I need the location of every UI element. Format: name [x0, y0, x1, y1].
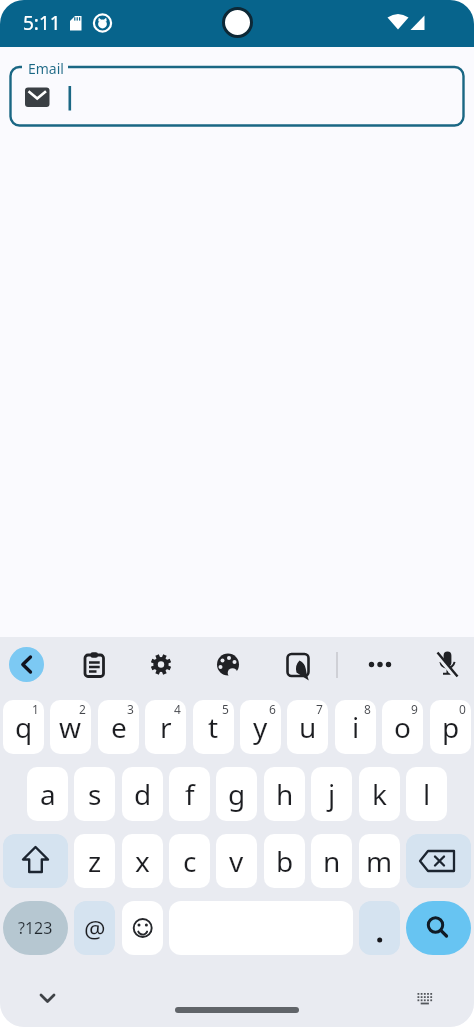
button[interactable]: e — [98, 700, 139, 754]
staticText: ?123 — [18, 917, 53, 939]
button[interactable] — [427, 644, 467, 684]
button[interactable]: j — [311, 767, 352, 821]
button[interactable] — [405, 978, 445, 1018]
staticText: o — [394, 708, 411, 746]
button[interactable]: r — [145, 700, 186, 754]
staticText: d — [134, 775, 152, 813]
button[interactable]: h — [264, 767, 305, 821]
staticText: e — [111, 708, 127, 746]
button[interactable] — [406, 901, 471, 955]
staticText: l — [423, 775, 431, 813]
button[interactable]: d — [122, 767, 163, 821]
button[interactable] — [165, 990, 309, 1022]
button[interactable] — [3, 834, 68, 888]
staticText: 5:11 — [23, 10, 61, 36]
button[interactable]: b — [264, 834, 305, 888]
staticText: 7 — [316, 701, 323, 717]
button[interactable] — [75, 644, 115, 684]
staticText: u — [299, 708, 317, 746]
button[interactable]: f — [169, 767, 210, 821]
button[interactable]: v — [216, 834, 257, 888]
staticText: h — [276, 775, 294, 813]
staticText: g — [228, 775, 246, 813]
button[interactable] — [141, 644, 181, 684]
staticText: w — [59, 708, 82, 746]
staticText: 0 — [459, 701, 466, 717]
button[interactable]: n — [311, 834, 352, 888]
staticText: s — [88, 775, 102, 813]
button[interactable] — [27, 978, 67, 1018]
button[interactable]: t — [193, 700, 234, 754]
button[interactable]: @ — [74, 901, 115, 955]
button[interactable] — [122, 901, 163, 955]
button[interactable]: w — [50, 700, 91, 754]
staticText: @ — [84, 912, 106, 945]
button[interactable]: g — [216, 767, 257, 821]
staticText: 4 — [174, 701, 181, 717]
staticText: q — [15, 708, 33, 746]
staticText: k — [372, 775, 387, 813]
button[interactable] — [360, 644, 400, 684]
staticText: j — [328, 775, 336, 813]
staticText: 1 — [32, 701, 39, 717]
staticText: n — [323, 842, 341, 880]
button[interactable]: a — [27, 767, 68, 821]
staticText: y — [253, 708, 268, 746]
button[interactable]: z — [74, 834, 115, 888]
button[interactable]: c — [169, 834, 210, 888]
button[interactable]: k — [359, 767, 400, 821]
button[interactable] — [9, 647, 44, 682]
staticText: i — [352, 708, 360, 746]
staticText: x — [135, 842, 150, 880]
button[interactable]: x — [122, 834, 163, 888]
button[interactable]: y — [240, 700, 281, 754]
button[interactable] — [277, 644, 317, 684]
staticText: 6 — [269, 701, 276, 717]
staticText: b — [276, 842, 294, 880]
staticText: z — [88, 842, 102, 880]
staticText: a — [40, 775, 56, 813]
staticText: Email — [28, 59, 64, 78]
staticText: f — [185, 775, 195, 813]
button[interactable]: q — [3, 700, 44, 754]
staticText: v — [229, 842, 244, 880]
button[interactable]: o — [382, 700, 423, 754]
staticText: m — [366, 842, 393, 880]
button[interactable]: ?123 — [3, 901, 68, 955]
staticText: 2 — [79, 701, 86, 717]
button[interactable]: i — [335, 700, 376, 754]
button[interactable]: l — [406, 767, 447, 821]
button[interactable] — [208, 644, 248, 684]
staticText: 5 — [222, 701, 229, 717]
button[interactable] — [10, 67, 464, 126]
button[interactable] — [406, 834, 471, 888]
button[interactable]: u — [287, 700, 328, 754]
staticText: p — [442, 708, 460, 746]
staticText: 9 — [411, 701, 418, 717]
staticText: c — [183, 842, 197, 880]
button[interactable]: m — [359, 834, 400, 888]
button[interactable]: p — [430, 700, 471, 754]
staticText: 8 — [364, 701, 371, 717]
staticText: t — [208, 708, 219, 746]
staticText: r — [160, 708, 172, 746]
button[interactable]: s — [74, 767, 115, 821]
button[interactable] — [359, 901, 400, 955]
staticText: 3 — [127, 701, 134, 717]
